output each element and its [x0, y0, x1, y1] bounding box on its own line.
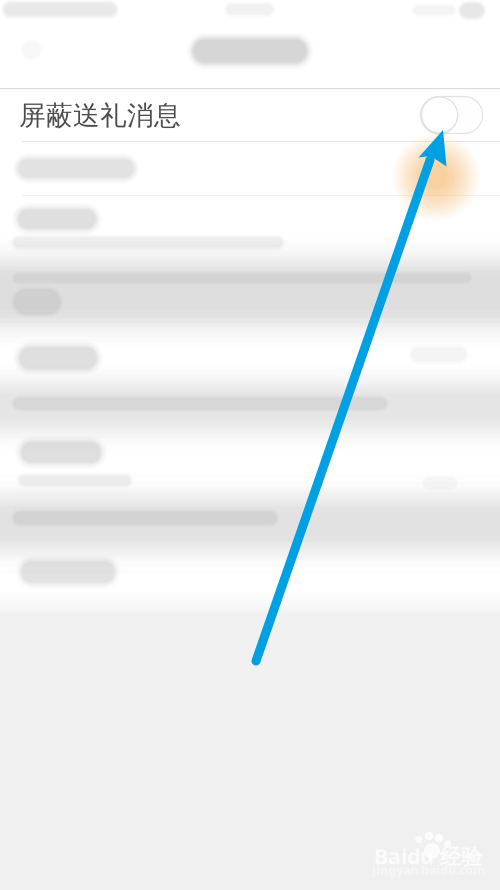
button[interactable]: 屏蔽送礼消息 [0, 89, 500, 142]
staticText: Baidu 经验 [374, 842, 482, 870]
staticText: jingyan.baidu.com [372, 862, 485, 878]
staticText: 屏蔽送礼消息 [19, 99, 181, 132]
button[interactable]: 屏蔽送礼消息 [421, 96, 483, 133]
